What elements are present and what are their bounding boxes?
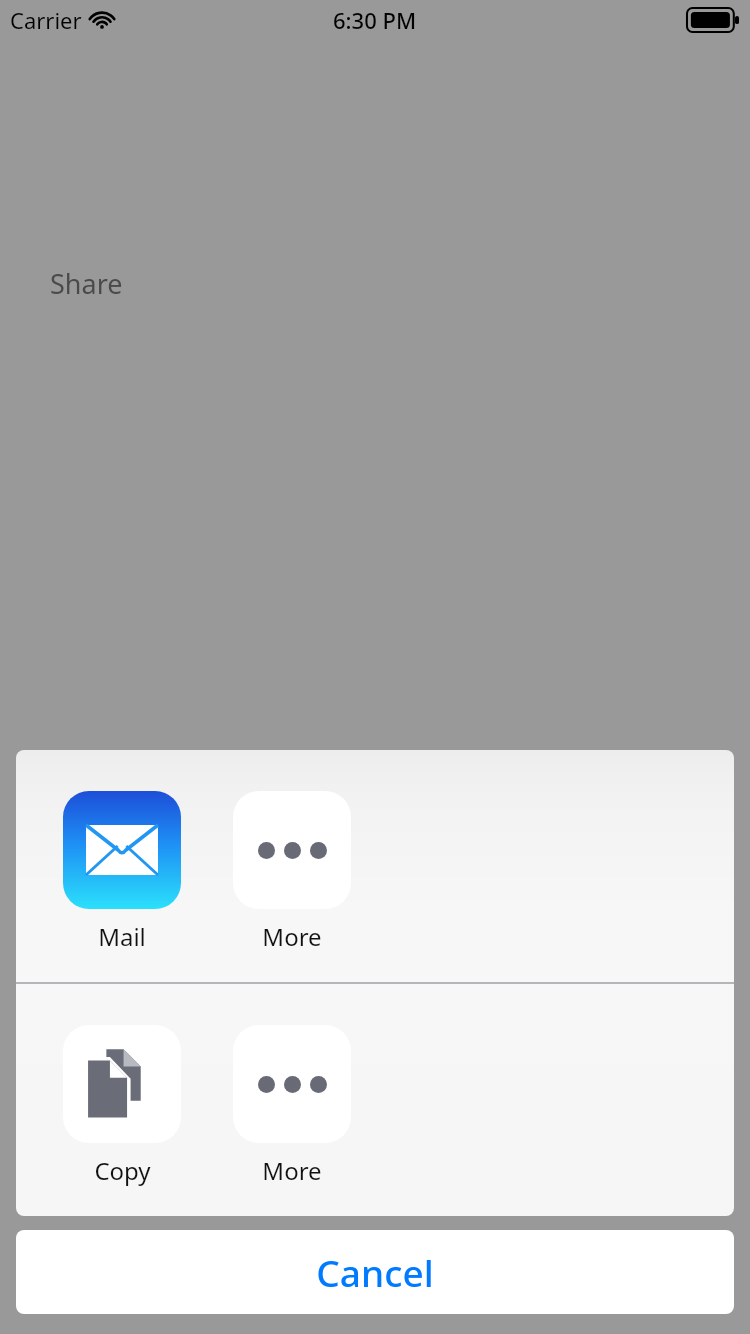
staticText: Cancel (316, 1247, 434, 1297)
staticText: More (262, 920, 322, 953)
button[interactable]: More (233, 791, 351, 953)
button[interactable]: More (233, 1025, 351, 1187)
staticText: More (262, 1154, 322, 1187)
button[interactable]: Mail (63, 791, 181, 953)
staticText: Mail (98, 920, 146, 953)
staticText: Share (50, 265, 123, 302)
staticText: Copy (94, 1154, 151, 1187)
button[interactable]: Cancel (16, 1230, 734, 1314)
staticText: 6:30 PM (333, 5, 417, 35)
button[interactable]: Copy (63, 1025, 181, 1187)
staticText: Carrier (10, 5, 82, 35)
